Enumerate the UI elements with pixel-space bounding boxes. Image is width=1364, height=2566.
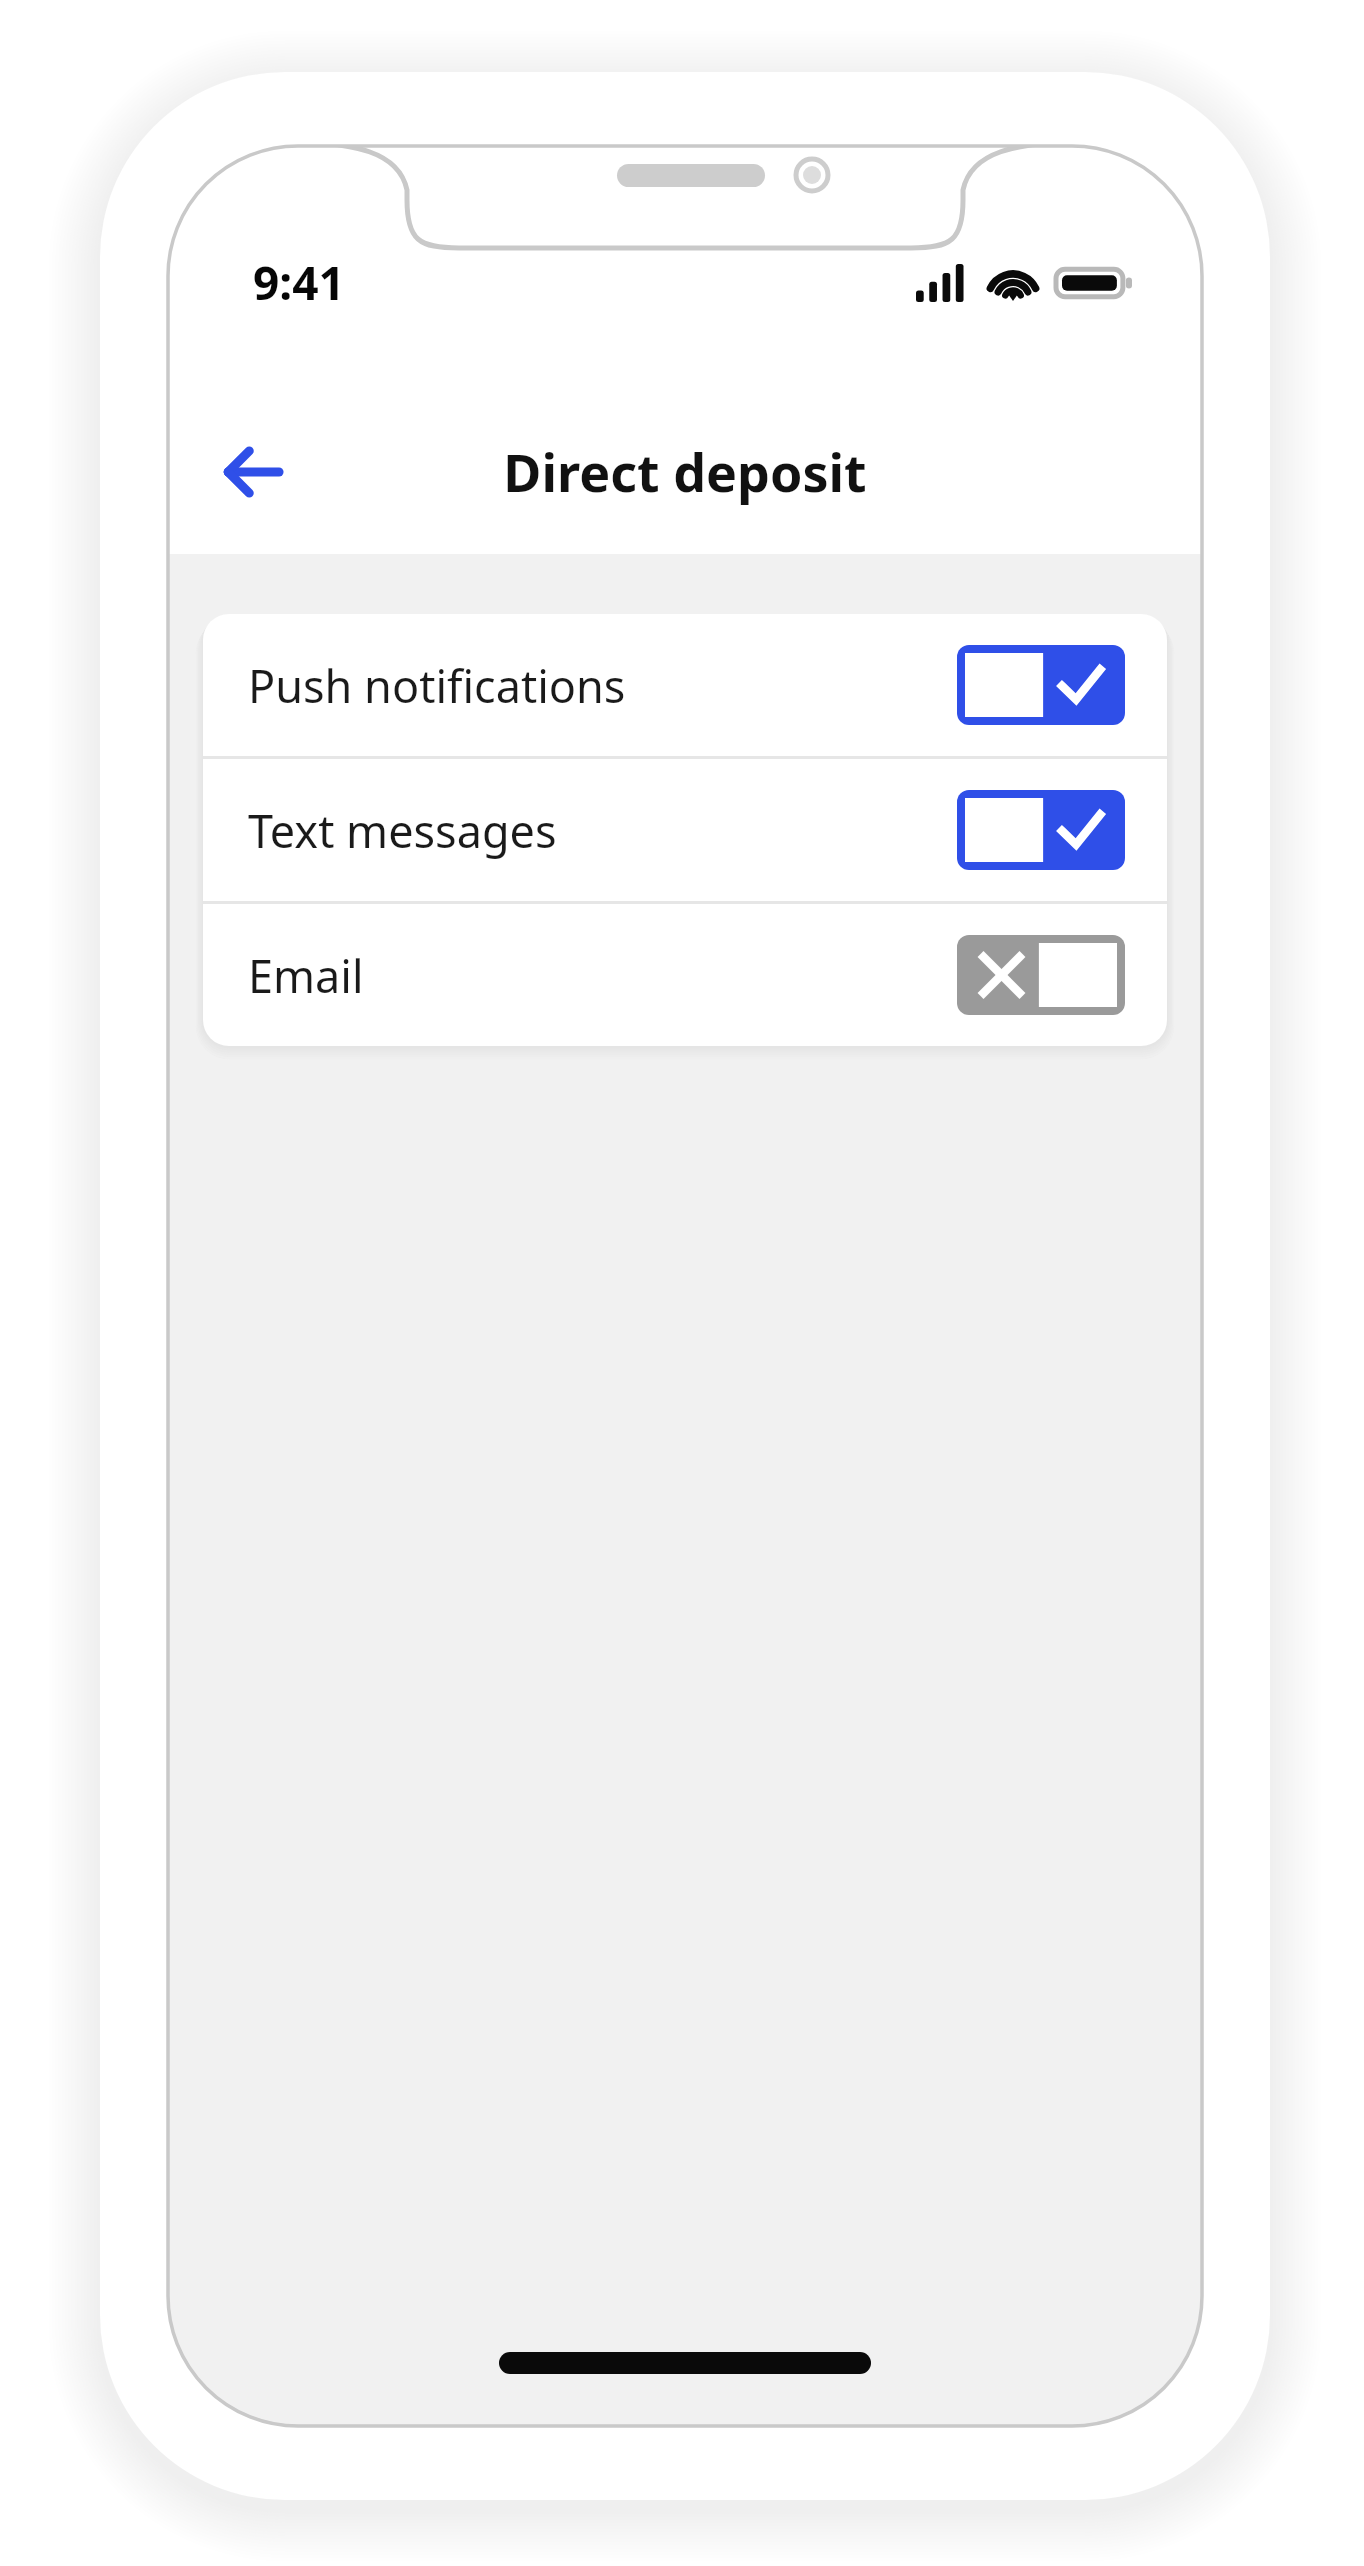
button[interactable]: On, toggle off bbox=[957, 645, 1125, 725]
button[interactable]: Push notifications bbox=[203, 614, 1167, 756]
button[interactable]: Off, toggle on bbox=[957, 935, 1125, 1015]
button[interactable]: On, toggle off bbox=[957, 790, 1125, 870]
staticText: Direct deposit bbox=[503, 436, 867, 507]
button[interactable]: Email bbox=[203, 904, 1167, 1046]
staticText: Push notifications bbox=[248, 655, 957, 716]
staticText: 9:41 bbox=[253, 251, 345, 314]
button[interactable]: Back bbox=[198, 417, 308, 527]
staticText: Email bbox=[248, 945, 957, 1006]
button[interactable]: Text messages bbox=[203, 759, 1167, 901]
staticText: Text messages bbox=[248, 800, 957, 861]
